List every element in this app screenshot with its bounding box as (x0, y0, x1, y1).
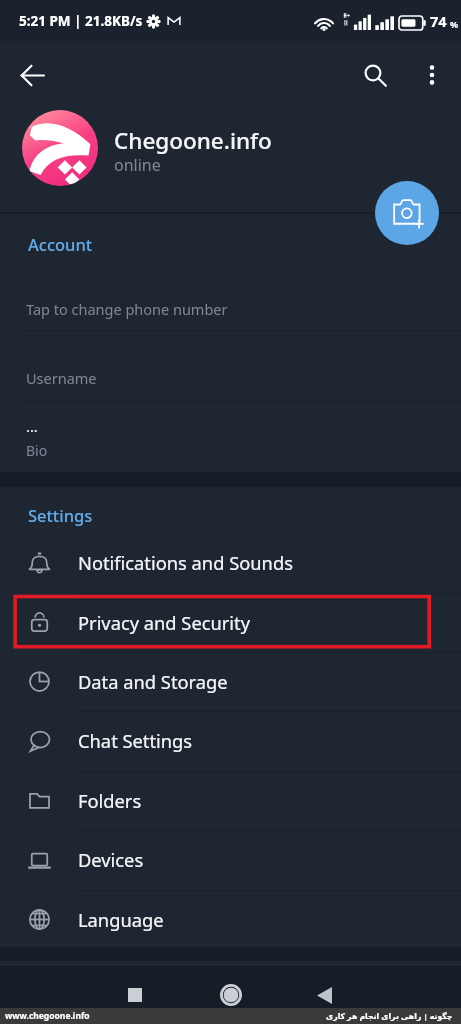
staticText: Devices (78, 847, 144, 872)
button[interactable]: Folders (0, 771, 461, 830)
button[interactable]: Language (0, 890, 461, 949)
staticText: Bio (26, 441, 48, 460)
staticText: % (450, 18, 459, 30)
staticText: Tap to change phone number (26, 299, 228, 319)
staticText: Chat Settings (78, 728, 193, 753)
button[interactable]: Chat Settings (0, 711, 461, 770)
staticText: Account (28, 233, 93, 255)
staticText: Data and Storage (78, 669, 228, 694)
button[interactable]: Username (0, 342, 461, 413)
button[interactable]: More options (410, 53, 454, 97)
button[interactable]: Back (302, 974, 346, 1016)
button[interactable]: ... (0, 402, 461, 472)
staticText: ... (26, 416, 38, 436)
button[interactable]: Tap to change phone number (0, 279, 461, 338)
button[interactable]: Data and Storage (0, 652, 461, 711)
staticText: Notifications and Sounds (78, 550, 293, 575)
staticText: Settings (28, 504, 93, 526)
button[interactable]: Devices (0, 830, 461, 889)
staticText: online (114, 154, 161, 176)
button[interactable]: Profile photo (22, 110, 98, 186)
button[interactable]: Home (209, 974, 253, 1016)
button[interactable]: Recent apps (113, 974, 157, 1016)
button[interactable]: Privacy and Security (0, 593, 461, 652)
staticText: www.chegoone.info (5, 1010, 90, 1022)
staticText: Privacy and Security (78, 610, 251, 635)
staticText: Folders (78, 788, 142, 813)
staticText: چگونه | راهی برای انجام هر کاری (326, 1011, 453, 1022)
staticText: Language (78, 907, 164, 932)
staticText: Username (26, 368, 97, 388)
staticText: 5:21 PM | 21.8KB/s (19, 12, 143, 30)
button[interactable]: Change profile photo (375, 181, 439, 245)
staticText: Chegoone.info (114, 125, 272, 156)
button[interactable]: Back (10, 53, 54, 97)
button[interactable]: Search (353, 53, 397, 97)
button[interactable]: Notifications and Sounds (0, 533, 461, 592)
staticText: 74 (430, 11, 447, 31)
